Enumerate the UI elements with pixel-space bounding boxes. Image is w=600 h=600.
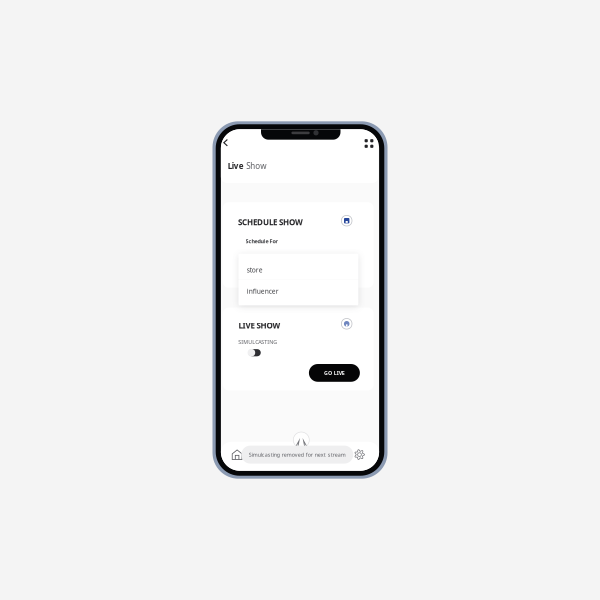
button[interactable]: Back <box>219 136 233 150</box>
staticText: Live <box>228 160 244 171</box>
staticText: store <box>247 265 263 274</box>
staticText: SCHEDULE SHOW <box>238 217 303 227</box>
button[interactable]: Live options <box>341 318 352 329</box>
staticText: Schedule For <box>246 238 278 245</box>
button[interactable]: store <box>239 254 358 279</box>
button[interactable]: Simulcasting <box>248 349 261 357</box>
button[interactable]: Schedule options <box>341 215 352 226</box>
button[interactable]: Apps <box>362 136 376 150</box>
staticText: next <box>315 451 326 458</box>
button[interactable]: influencer <box>239 279 358 305</box>
button[interactable]: Home <box>231 448 244 461</box>
staticText: Simulcasting <box>249 451 280 458</box>
button[interactable]: Settings <box>353 448 366 461</box>
staticText: Show <box>246 160 266 171</box>
staticText: for <box>306 451 313 458</box>
staticText: stream <box>328 451 346 458</box>
staticText: LIVE <box>334 369 345 376</box>
staticText: GO <box>324 369 332 376</box>
staticText: SIMULCASTING <box>238 338 277 345</box>
staticText: influencer <box>247 287 279 296</box>
staticText: removed <box>282 451 304 458</box>
staticText: LIVE SHOW <box>238 320 280 331</box>
button[interactable]: GO <box>309 364 360 382</box>
